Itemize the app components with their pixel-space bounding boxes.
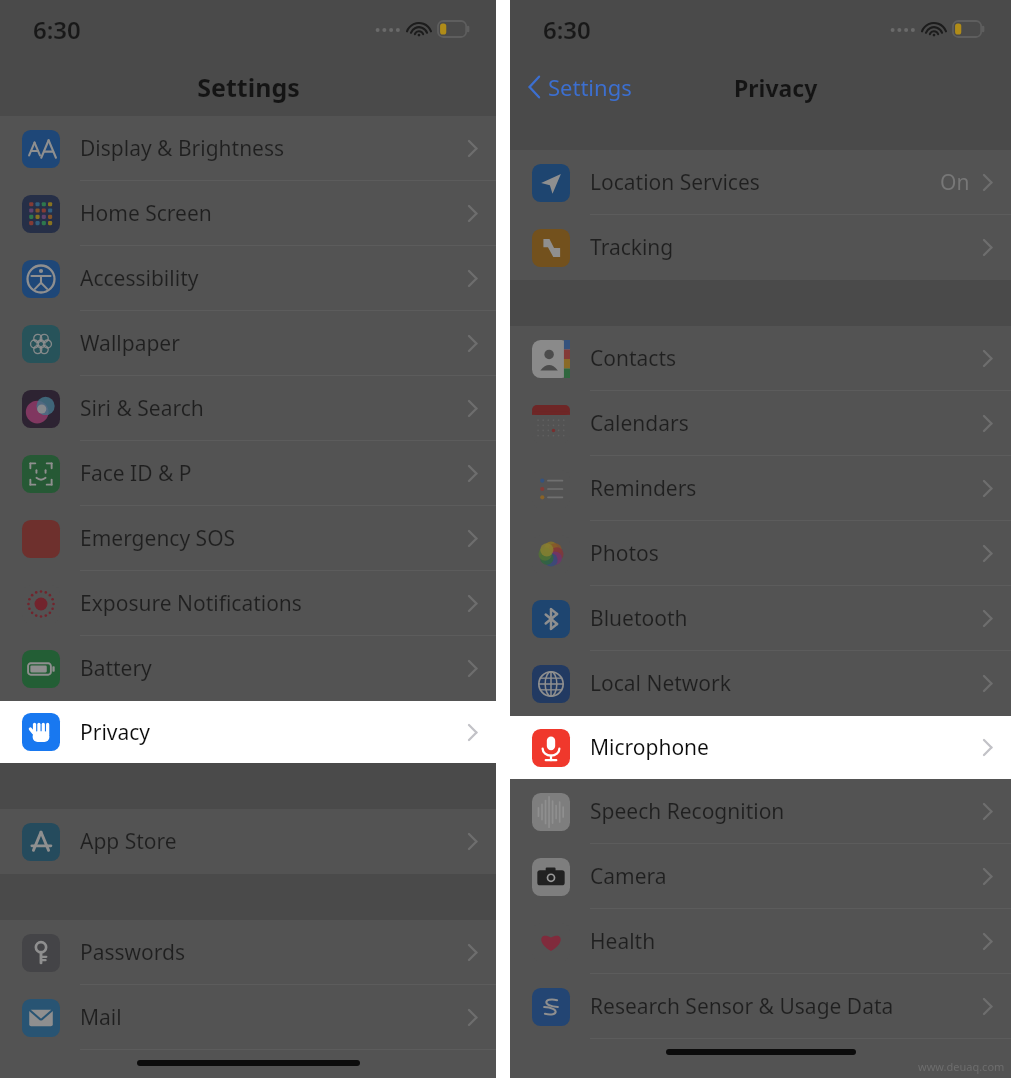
staticText: On xyxy=(940,168,970,197)
staticText: 6:30 xyxy=(33,13,81,46)
staticText: Siri & Search xyxy=(80,394,204,423)
button[interactable]: Bluetooth xyxy=(510,586,1011,651)
staticText: App Store xyxy=(80,827,177,856)
staticText: Battery xyxy=(80,654,152,683)
button[interactable]: Camera xyxy=(510,844,1011,909)
button[interactable]: Contacts xyxy=(510,326,1011,391)
staticText: Location Services xyxy=(590,168,760,197)
staticText: Passwords xyxy=(80,938,186,967)
button[interactable]: App Store xyxy=(0,809,496,874)
staticText: www.deuaq.com xyxy=(918,1059,1005,1074)
button[interactable]: Calendars xyxy=(510,391,1011,456)
button[interactable]: Health xyxy=(510,909,1011,974)
staticText: 6:30 xyxy=(543,13,591,46)
staticText: Bluetooth xyxy=(590,604,688,633)
staticText: Display & Brightness xyxy=(80,134,285,163)
button[interactable]: Accessibility xyxy=(0,246,496,311)
staticText: Speech Recognition xyxy=(590,797,785,826)
staticText: Face ID & P xyxy=(80,459,192,488)
staticText: Mail xyxy=(80,1003,122,1032)
staticText: Tracking xyxy=(590,233,674,262)
staticText: Emergency SOS xyxy=(80,524,236,553)
staticText: Reminders xyxy=(590,474,697,503)
staticText: Contacts xyxy=(590,344,677,373)
button[interactable]: Passwords xyxy=(0,920,496,985)
button[interactable]: Mail xyxy=(0,985,496,1050)
staticText: Wallpaper xyxy=(80,329,180,358)
staticText: Camera xyxy=(590,862,667,891)
staticText: Accessibility xyxy=(80,264,199,293)
button[interactable]: Exposure Notifications xyxy=(0,571,496,636)
button[interactable]: Tracking xyxy=(510,215,1011,280)
staticText: Research Sensor & Usage Data xyxy=(590,992,894,1021)
staticText: Privacy xyxy=(80,718,151,747)
button[interactable]: Face ID & P xyxy=(0,441,496,506)
button[interactable]: Research Sensor & Usage Data xyxy=(510,974,1011,1039)
staticText: Health xyxy=(590,927,656,956)
staticText: Home Screen xyxy=(80,199,212,228)
staticText: Settings xyxy=(548,72,632,102)
staticText: Settings xyxy=(197,70,300,104)
button[interactable]: Microphone xyxy=(510,716,1011,779)
staticText: Microphone xyxy=(590,733,709,762)
button[interactable]: Speech Recognition xyxy=(510,779,1011,844)
button[interactable]: Battery xyxy=(0,636,496,701)
staticText: Local Network xyxy=(590,669,731,698)
button[interactable]: Siri & Search xyxy=(0,376,496,441)
staticText: Photos xyxy=(590,539,659,568)
button[interactable]: Settings xyxy=(524,66,636,108)
staticText: Exposure Notifications xyxy=(80,589,302,618)
button[interactable]: Wallpaper xyxy=(0,311,496,376)
button[interactable]: Privacy xyxy=(0,701,496,763)
button[interactable]: Location Services xyxy=(510,150,1011,215)
button[interactable]: Emergency SOS xyxy=(0,506,496,571)
button[interactable]: Home Screen xyxy=(0,181,496,246)
button[interactable]: Photos xyxy=(510,521,1011,586)
button[interactable]: Reminders xyxy=(510,456,1011,521)
button[interactable]: Local Network xyxy=(510,651,1011,716)
staticText: Privacy xyxy=(734,72,818,103)
button[interactable]: Display & Brightness xyxy=(0,116,496,181)
staticText: Calendars xyxy=(590,409,689,438)
